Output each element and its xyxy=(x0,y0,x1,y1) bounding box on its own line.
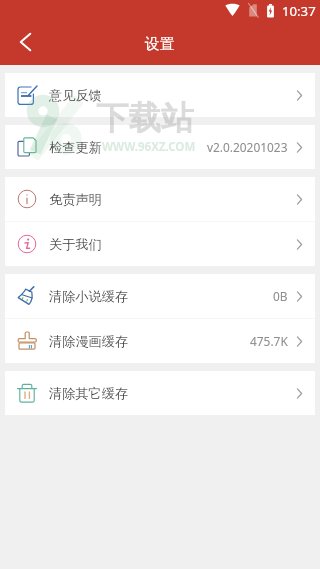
staticText: WWW.96XZ.COM xyxy=(102,139,196,155)
button[interactable]: 免责声明 xyxy=(5,177,315,221)
staticText: 10:37 xyxy=(282,2,316,20)
button[interactable]: 清除漫画缓存 xyxy=(5,319,315,363)
button[interactable]: 清除其它缓存 xyxy=(5,371,315,415)
button[interactable]: 关于我们 xyxy=(5,222,315,266)
button[interactable]: 意见反馈 xyxy=(5,73,315,117)
staticText: 475.7K xyxy=(250,333,288,349)
staticText: 清除其它缓存 xyxy=(49,385,129,402)
staticText: 清除小说缓存 xyxy=(49,288,129,305)
staticText: 下载站 xyxy=(96,98,194,139)
button[interactable]: Back xyxy=(5,22,45,62)
button[interactable]: 清除小说缓存 xyxy=(5,274,315,318)
staticText: 免责声明 xyxy=(49,191,102,208)
staticText: 关于我们 xyxy=(49,236,102,253)
staticText: 检查更新 xyxy=(49,139,102,156)
staticText: v2.0.20201023 xyxy=(207,139,288,155)
staticText: 清除漫画缓存 xyxy=(49,333,129,350)
staticText: 0B xyxy=(273,288,288,304)
staticText: 设置 xyxy=(145,35,175,54)
button[interactable]: 检查更新 xyxy=(5,125,315,169)
staticText: 意见反馈 xyxy=(49,87,102,104)
